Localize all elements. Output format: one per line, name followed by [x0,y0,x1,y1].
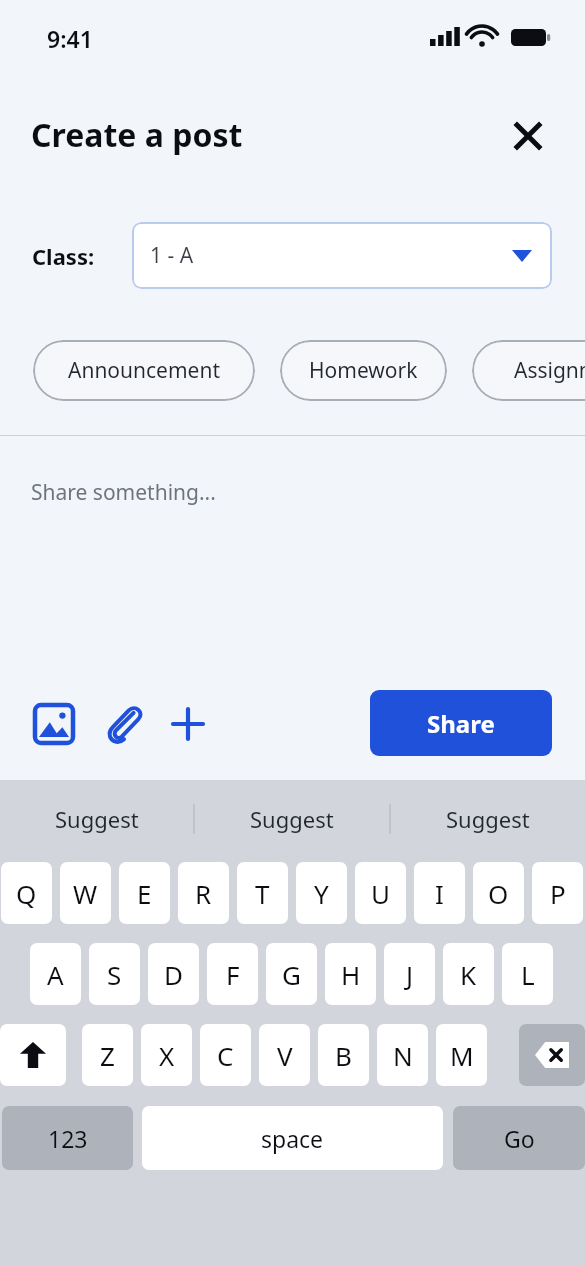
staticText: E [137,876,152,911]
staticText: H [341,957,361,992]
staticText: Announcement [68,356,220,385]
staticText: Suggest [250,804,334,834]
staticText: space [261,1123,324,1154]
button[interactable]: F [207,943,258,1005]
button[interactable]: P [532,862,583,924]
button[interactable]: Suggest [391,804,585,834]
staticText: Go [504,1123,535,1154]
button[interactable]: B [318,1024,369,1086]
staticText: I [435,876,444,911]
staticText: Create a post [31,113,243,157]
button[interactable]: Go [453,1106,585,1170]
button[interactable]: N [377,1024,428,1086]
button[interactable]: Homework [280,340,447,401]
staticText: U [371,876,391,911]
staticText: Homework [309,356,418,385]
button[interactable]: G [266,943,317,1005]
button[interactable]: Q [1,862,52,924]
button[interactable]: Z [82,1024,133,1086]
button[interactable]: K [443,943,494,1005]
staticText: P [550,876,566,911]
staticText: N [393,1038,413,1073]
button[interactable]: E [119,862,170,924]
staticText: Suggest [446,804,530,834]
button[interactable]: More options [162,698,214,750]
staticText: W [73,876,98,911]
button[interactable]: Y [296,862,347,924]
button[interactable]: Add image [28,698,80,750]
staticText: Share [427,707,495,740]
staticText: Suggest [55,804,139,834]
staticText: F [226,957,240,992]
staticText: Assignment [514,356,585,385]
button[interactable]: S [89,943,140,1005]
staticText: A [47,957,64,992]
button[interactable]: V [259,1024,310,1086]
button[interactable]: M [436,1024,487,1086]
staticText: C [217,1038,234,1073]
staticText: J [406,957,414,992]
button[interactable]: Share [370,690,552,756]
staticText: Q [16,876,37,911]
button[interactable]: Attach file [98,698,150,750]
staticText: T [255,876,270,911]
staticText: G [282,957,301,992]
staticText: 1 - A [150,241,194,270]
button[interactable]: C [200,1024,251,1086]
button[interactable]: Shift [0,1024,66,1086]
staticText: K [460,957,477,992]
button[interactable]: U [355,862,406,924]
button[interactable]: 123 [2,1106,133,1170]
button[interactable]: space [142,1106,443,1170]
button[interactable]: Suggest [0,804,193,834]
staticText: O [488,876,509,911]
button[interactable]: Announcement [33,340,255,401]
button[interactable]: X [141,1024,192,1086]
staticText: 9:41 [47,23,93,54]
button[interactable]: O [473,862,524,924]
staticText: 123 [48,1123,88,1154]
button[interactable]: Assignment [472,340,585,401]
button[interactable]: T [237,862,288,924]
staticText: R [195,876,212,911]
button[interactable]: L [502,943,553,1005]
staticText: Z [100,1038,115,1073]
staticText: Class: [32,241,95,271]
button[interactable]: I [414,862,465,924]
staticText: Y [314,876,329,911]
button[interactable]: Backspace [519,1024,585,1086]
staticText: Share something... [31,478,216,507]
button[interactable]: A [30,943,81,1005]
button[interactable]: H [325,943,376,1005]
button[interactable]: Suggest [195,804,389,834]
staticText: M [450,1038,474,1073]
button[interactable]: W [60,862,111,924]
staticText: B [335,1038,352,1073]
staticText: D [164,957,183,992]
button[interactable]: J [384,943,435,1005]
button[interactable]: Close [500,108,556,164]
button[interactable]: 1 - A [132,222,552,289]
button[interactable]: D [148,943,199,1005]
staticText: X [159,1038,175,1073]
staticText: S [107,957,122,992]
staticText: L [521,957,535,992]
button[interactable]: R [178,862,229,924]
staticText: V [277,1038,293,1073]
